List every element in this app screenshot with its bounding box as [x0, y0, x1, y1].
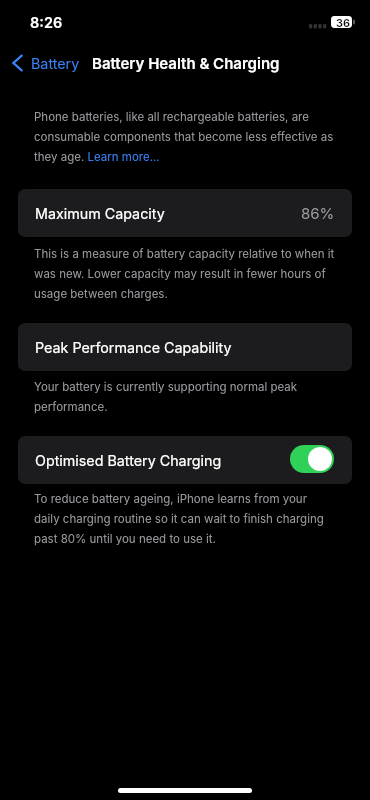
button[interactable]: Optimised Battery Charging	[18, 436, 352, 484]
button[interactable]: Peak Performance Capability	[18, 323, 352, 371]
staticText: Battery	[31, 55, 80, 72]
button[interactable]: Optimised Battery Charging toggle	[290, 445, 334, 473]
staticText: Your battery is currently supporting nor…	[34, 375, 335, 415]
staticText: 86%	[301, 204, 335, 222]
staticText: 36	[336, 16, 351, 29]
button[interactable]: Maximum Capacity	[18, 189, 352, 237]
staticText: Optimised Battery Charging	[35, 452, 222, 469]
staticText: Phone batteries, like all rechargeable b…	[34, 105, 335, 165]
staticText: 8:26	[30, 14, 63, 32]
staticText: This is a measure of battery capacity re…	[34, 242, 335, 302]
staticText: Battery Health & Charging	[92, 54, 280, 72]
button[interactable]: Battery	[0, 50, 86, 76]
staticText: Maximum Capacity	[35, 205, 165, 222]
staticText: Peak Performance Capability	[35, 339, 232, 356]
staticText: To reduce battery ageing, iPhone learns …	[34, 487, 335, 547]
